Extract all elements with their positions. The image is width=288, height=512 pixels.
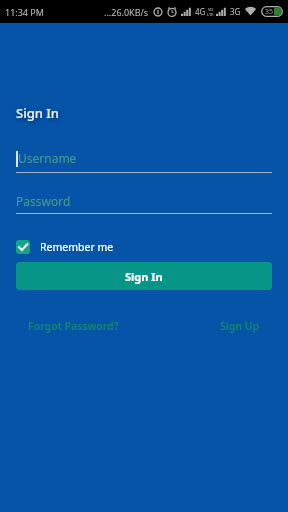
staticText: 11:34 PM: [5, 6, 44, 18]
button[interactable]: Forgot Password?: [28, 319, 119, 333]
button[interactable]: Sign In: [16, 262, 272, 290]
button[interactable]: Sign Up: [220, 319, 260, 333]
staticText: Sign In: [125, 269, 163, 284]
button[interactable]: Password: [16, 193, 71, 209]
button[interactable]: Remember me: [16, 240, 114, 254]
button[interactable]: Username: [18, 150, 77, 166]
staticText: 35: [265, 7, 274, 17]
staticText: ...26.0KB/s: [104, 6, 149, 18]
staticText: LTE: [207, 12, 214, 17]
staticText: 4G: [195, 6, 206, 17]
staticText: Sign In: [16, 104, 60, 122]
staticText: 3G: [230, 6, 241, 17]
staticText: Remember me: [40, 240, 114, 254]
staticText: VO: [208, 7, 214, 12]
